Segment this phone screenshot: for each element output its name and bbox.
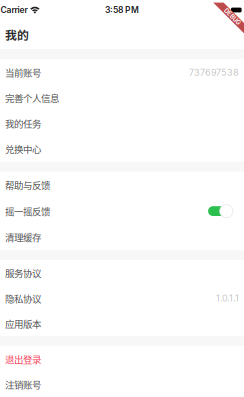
- button[interactable]: 服务协议: [0, 260, 244, 286]
- staticText: 兑换中心: [5, 142, 41, 156]
- button[interactable]: 我的任务: [0, 111, 244, 136]
- staticText: 隐私协议: [5, 291, 41, 305]
- button[interactable]: 完善个人信息: [0, 85, 244, 111]
- button[interactable]: 注销账号: [0, 372, 244, 397]
- staticText: Carrier: [1, 5, 28, 15]
- staticText: 我的: [5, 26, 29, 43]
- staticText: 1.0.1.1: [216, 293, 239, 304]
- button[interactable]: 兑换中心: [0, 136, 244, 162]
- staticText: 3:58 PM: [105, 5, 139, 15]
- button[interactable]: 清理缓存: [0, 224, 244, 250]
- button[interactable]: 当前账号: [0, 60, 244, 85]
- button[interactable]: 帮助与反馈: [0, 172, 244, 198]
- staticText: 注销账号: [5, 377, 41, 391]
- staticText: 清理缓存: [5, 230, 41, 244]
- button[interactable]: 隐私协议: [0, 286, 244, 311]
- staticText: 摇一摇反馈: [5, 204, 50, 218]
- staticText: 当前账号: [5, 65, 41, 79]
- button[interactable]: 退出登录: [0, 346, 244, 372]
- staticText: 我的任务: [5, 116, 41, 130]
- staticText: DEBUG: [222, 13, 242, 20]
- staticText: 完善个人信息: [5, 91, 59, 105]
- staticText: 737697538: [189, 67, 239, 78]
- staticText: 应用版本: [5, 317, 41, 330]
- button[interactable]: 摇一摇反馈: [0, 198, 244, 224]
- staticText: 服务协议: [5, 266, 41, 280]
- button[interactable]: 应用版本: [0, 311, 244, 336]
- staticText: 退出登录: [5, 352, 41, 366]
- staticText: 帮助与反馈: [5, 178, 50, 192]
